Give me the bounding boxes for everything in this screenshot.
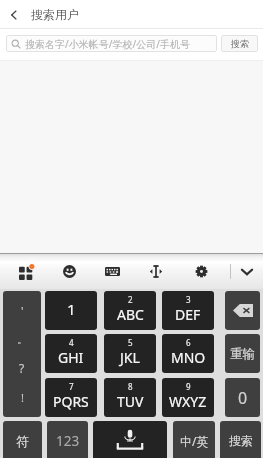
staticText: DEF bbox=[175, 305, 201, 324]
staticText: ABC bbox=[117, 305, 144, 324]
staticText: 1 bbox=[67, 299, 76, 319]
button[interactable]: Settings bbox=[178, 254, 224, 289]
staticText: MNO bbox=[171, 348, 206, 367]
button[interactable]: 5 bbox=[104, 334, 156, 373]
button[interactable]: Back bbox=[0, 0, 28, 29]
staticText: 搜索名字/小米帐号/学校/公司/手机号 bbox=[25, 37, 190, 51]
staticText: 4 bbox=[69, 337, 74, 348]
button[interactable]: 8 bbox=[104, 378, 156, 417]
button[interactable]: 搜索 bbox=[220, 421, 261, 458]
staticText: 5 bbox=[128, 337, 133, 348]
staticText: 0 bbox=[238, 387, 248, 409]
staticText: WXYZ bbox=[169, 392, 207, 411]
button[interactable]: 4 bbox=[45, 334, 97, 373]
button[interactable]: Backspace bbox=[225, 291, 260, 330]
button[interactable]: 9 bbox=[162, 378, 214, 417]
button[interactable]: 1 bbox=[45, 291, 97, 330]
staticText: 123 bbox=[56, 432, 80, 450]
button[interactable]: Keyboard bbox=[91, 254, 134, 289]
button[interactable]: Move cursor bbox=[134, 254, 178, 289]
button[interactable]: Voice input bbox=[93, 421, 167, 458]
button[interactable]: 中/英 bbox=[173, 421, 215, 458]
button[interactable]: 符 bbox=[3, 421, 42, 458]
staticText: 搜索用户 bbox=[31, 7, 79, 22]
staticText: 6 bbox=[186, 337, 191, 348]
button[interactable]: 7 bbox=[45, 378, 97, 417]
button[interactable]: Hide keyboard bbox=[231, 254, 263, 289]
staticText: PQRS bbox=[53, 392, 89, 411]
button[interactable]: Emoji bbox=[47, 254, 91, 289]
staticText: 。 bbox=[17, 332, 28, 346]
staticText: 2 bbox=[128, 294, 133, 305]
button[interactable]: Punctuation bbox=[3, 291, 41, 417]
button[interactable]: 搜索名字/小米帐号/学校/公司/手机号 bbox=[6, 35, 217, 52]
staticText: TUV bbox=[117, 392, 144, 411]
button[interactable]: 123 bbox=[47, 421, 88, 458]
staticText: 中/英 bbox=[180, 433, 209, 449]
staticText: JKL bbox=[120, 348, 140, 367]
staticText: ' bbox=[21, 303, 24, 318]
button[interactable]: 重输 bbox=[225, 334, 260, 373]
staticText: 8 bbox=[128, 381, 133, 392]
staticText: 重输 bbox=[230, 346, 255, 362]
staticText: 9 bbox=[186, 381, 191, 392]
button[interactable]: 3 bbox=[162, 291, 214, 330]
button[interactable]: 6 bbox=[162, 334, 214, 373]
button[interactable]: 2 bbox=[104, 291, 156, 330]
staticText: GHI bbox=[58, 348, 84, 367]
staticText: 搜索 bbox=[231, 38, 249, 49]
staticText: ! bbox=[21, 390, 24, 405]
staticText: ? bbox=[19, 360, 25, 376]
button[interactable]: 搜索 bbox=[221, 35, 258, 52]
staticText: 搜索 bbox=[229, 433, 253, 448]
button[interactable]: Keyboard layouts bbox=[4, 254, 47, 289]
button[interactable]: 0 bbox=[225, 378, 260, 417]
staticText: 7 bbox=[69, 381, 74, 392]
staticText: 符 bbox=[16, 433, 29, 449]
staticText: 3 bbox=[186, 294, 191, 305]
